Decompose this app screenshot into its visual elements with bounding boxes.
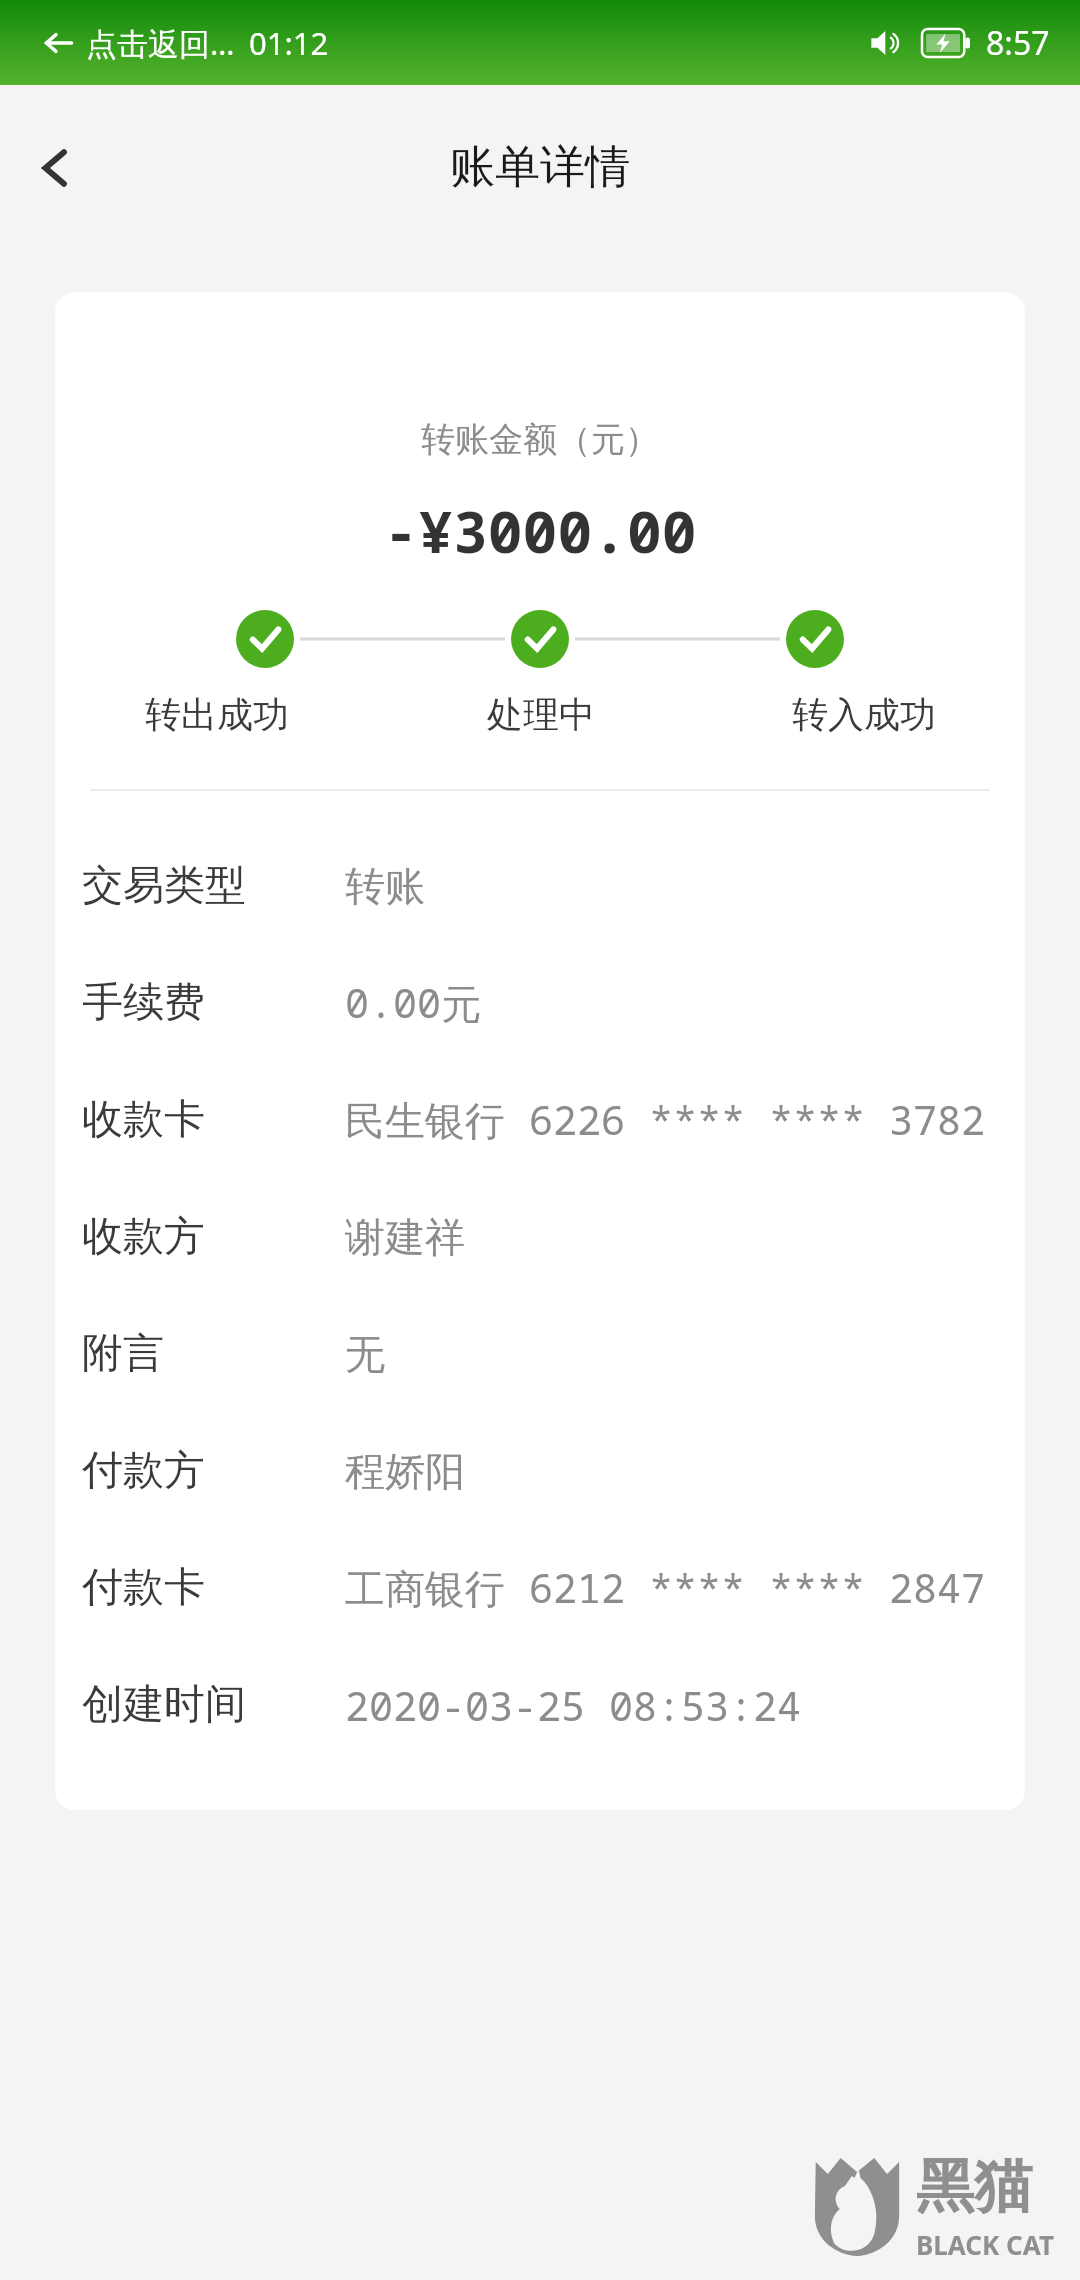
- button[interactable]: 付款方: [55, 1412, 1025, 1529]
- staticText: 点击返回…: [86, 22, 235, 64]
- staticText: -¥3000.00: [55, 491, 1025, 570]
- staticText: 转出成功: [145, 692, 289, 737]
- staticText: 0.00元: [345, 975, 481, 1030]
- staticText: 交易类型: [82, 860, 246, 912]
- staticText: 手续费: [82, 977, 205, 1029]
- staticText: 账单详情: [450, 139, 630, 196]
- staticText: 民生银行 6226 **** **** 3782: [345, 1092, 985, 1147]
- staticText: 01:12: [249, 22, 329, 64]
- staticText: 付款卡: [82, 1562, 205, 1614]
- staticText: 8:57: [986, 21, 1050, 65]
- staticText: 收款方: [82, 1211, 205, 1263]
- staticText: 无: [345, 1329, 385, 1379]
- button[interactable]: 收款卡: [55, 1061, 1025, 1178]
- button[interactable]: 手续费: [55, 944, 1025, 1061]
- staticText: 收款卡: [82, 1094, 205, 1146]
- staticText: 创建时间: [82, 1679, 246, 1731]
- staticText: BLACK CAT: [916, 2227, 1054, 2262]
- button[interactable]: 收款方: [55, 1178, 1025, 1295]
- button[interactable]: 创建时间: [55, 1646, 1025, 1763]
- button[interactable]: 付款卡: [55, 1529, 1025, 1646]
- staticText: 附言: [82, 1328, 164, 1380]
- staticText: 黑猫: [916, 2150, 1032, 2223]
- staticText: 谢建祥: [345, 1212, 465, 1262]
- staticText: 付款方: [82, 1445, 205, 1497]
- staticText: 转账: [345, 861, 425, 911]
- staticText: 转入成功: [792, 692, 936, 737]
- button[interactable]: 交易类型: [55, 827, 1025, 944]
- staticText: 程娇阳: [345, 1446, 465, 1496]
- staticText: 2020-03-25 08:53:24: [345, 1678, 801, 1732]
- button[interactable]: 附言: [55, 1295, 1025, 1412]
- button[interactable]: Back: [8, 120, 104, 216]
- staticText: 转账金额（元）: [55, 418, 1025, 461]
- staticText: 工商银行 6212 **** **** 2847: [345, 1560, 985, 1615]
- staticText: 处理中: [487, 692, 595, 737]
